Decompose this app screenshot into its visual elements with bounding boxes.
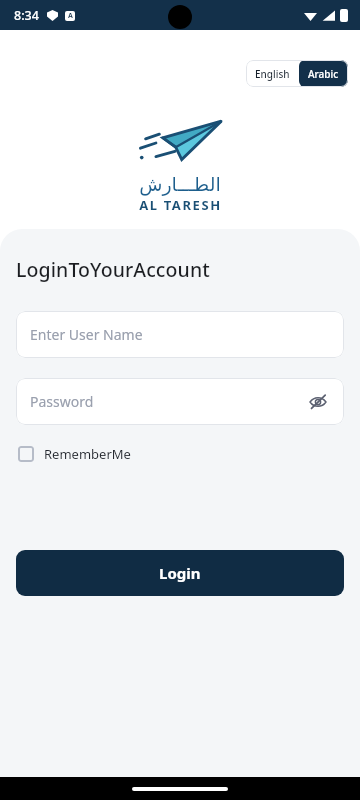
staticText: Login [159, 563, 201, 583]
staticText: English [255, 67, 290, 81]
staticText: LoginToYourAccount [16, 256, 210, 283]
staticText: AL TARESH [139, 196, 222, 214]
staticText: A [68, 11, 73, 21]
button[interactable]: Arabic [299, 60, 348, 87]
staticText: الطـــارش [139, 173, 221, 195]
button[interactable]: Enter User Name [16, 311, 344, 358]
button[interactable]: Password [16, 378, 344, 425]
staticText: RememberMe [44, 445, 131, 463]
staticText: 8:34 [14, 7, 39, 24]
button[interactable]: RememberMe [16, 441, 133, 467]
staticText: Arabic [308, 67, 339, 81]
button[interactable]: Login [16, 550, 344, 596]
button[interactable]: English [246, 60, 299, 87]
staticText: Password [30, 392, 306, 411]
staticText: Enter User Name [30, 325, 330, 344]
button[interactable]: Show password [306, 390, 330, 414]
